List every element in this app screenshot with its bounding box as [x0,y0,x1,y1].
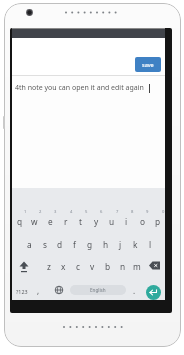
staticText: k [133,239,138,250]
button[interactable]: , [33,284,43,296]
staticText: d [57,239,63,250]
staticText: z [47,261,51,272]
staticText: , [37,285,40,296]
button[interactable]: u [104,214,119,228]
staticText: y [94,216,99,227]
staticText: m [133,261,141,272]
staticText: r [64,216,68,227]
button[interactable]: . [129,284,139,296]
staticText: c [76,261,80,272]
staticText: v [90,261,95,272]
button[interactable]: English [70,285,126,295]
button[interactable]: r [58,214,73,228]
staticText: i [125,216,128,227]
button[interactable]: m [129,259,144,273]
staticText: j [119,239,122,250]
staticText: 9 [146,209,149,215]
staticText: o [140,216,146,227]
staticText: w [31,216,38,227]
staticText: 4th note you can open it and edit again [15,83,144,93]
staticText: . [133,285,136,296]
button[interactable] [54,285,64,295]
staticText: g [87,239,93,250]
button[interactable]: n [115,259,130,273]
button[interactable]: x [56,259,71,273]
staticText: u [109,216,115,227]
staticText: x [61,261,66,272]
staticText: 1 [24,209,27,215]
button[interactable]: z [41,259,56,273]
button[interactable] [12,188,165,300]
button[interactable]: ?123 [11,285,33,297]
staticText: l [149,239,152,250]
staticText: h [103,239,109,250]
staticText: n [120,261,126,272]
button[interactable]: q [12,214,27,228]
staticText: q [17,216,23,227]
staticText: p [155,216,161,227]
staticText: 5 [85,209,88,215]
button[interactable]: g [82,237,97,251]
staticText: 2 [39,209,42,215]
staticText: save [142,61,154,68]
staticText: 0 [162,209,165,215]
button[interactable]: w [27,214,42,228]
button[interactable]: d [52,237,67,251]
button[interactable]: save [135,57,161,72]
button[interactable] [146,285,161,300]
staticText: 3 [54,209,57,215]
staticText: a [27,239,32,250]
button[interactable]: y [89,214,104,228]
button[interactable]: j [113,237,128,251]
staticText: s [43,239,47,250]
button[interactable]: p [150,214,165,228]
button[interactable]: k [128,237,143,251]
staticText: f [73,239,76,250]
button[interactable]: h [98,237,113,251]
button[interactable]: t [73,214,88,228]
staticText: 6 [100,209,103,215]
button[interactable]: o [135,214,150,228]
button[interactable]: i [119,214,134,228]
button[interactable]: v [85,259,100,273]
button[interactable] [16,258,32,274]
staticText: English [90,287,106,293]
staticText: t [79,216,82,227]
staticText: 7 [116,209,119,215]
staticText: 4 [70,209,73,215]
staticText: 8 [131,209,134,215]
staticText: b [105,261,111,272]
button[interactable]: b [100,259,115,273]
button[interactable]: a [22,237,37,251]
button[interactable]: l [143,237,158,251]
button[interactable] [148,260,162,271]
button[interactable]: c [70,259,85,273]
button[interactable]: f [67,237,82,251]
button[interactable]: e [43,214,58,228]
staticText: ?123 [16,288,28,295]
button[interactable]: s [37,237,52,251]
staticText: e [48,216,53,227]
